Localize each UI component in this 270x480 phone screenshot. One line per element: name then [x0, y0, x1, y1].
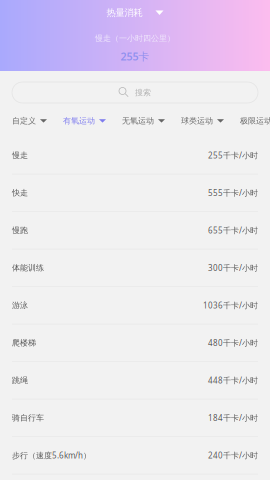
staticText: 步行（速度5.6km/h）: [12, 450, 91, 461]
staticText: 体能训练: [12, 263, 44, 273]
staticText: 快走: [12, 188, 28, 198]
staticText: 慢走（一小时四公里）: [95, 33, 175, 43]
staticText: 300千卡/小时: [208, 262, 258, 273]
staticText: 480千卡/小时: [208, 337, 258, 348]
button[interactable]: 快走: [0, 174, 270, 212]
button[interactable]: 自定义: [12, 113, 47, 129]
button[interactable]: 无氧运动: [122, 113, 165, 129]
staticText: 爬楼梯: [12, 338, 36, 348]
button[interactable]: 骑自行车: [0, 399, 270, 437]
staticText: 655千卡/小时: [208, 225, 258, 236]
staticText: 慢走: [12, 150, 28, 160]
button[interactable]: 有氧运动: [63, 113, 106, 129]
staticText: 有氧运动: [63, 116, 95, 126]
staticText: 无氧运动: [122, 116, 154, 126]
button[interactable]: 慢跑: [0, 212, 270, 249]
staticText: 游泳: [12, 300, 28, 310]
staticText: 255卡: [120, 49, 149, 63]
button[interactable]: 游泳: [0, 287, 270, 324]
staticText: 搜索: [135, 88, 151, 97]
staticText: 跳绳: [12, 375, 28, 385]
button[interactable]: 搜索: [12, 82, 258, 103]
staticText: 骑自行车: [12, 413, 44, 423]
staticText: 184千卡/小时: [208, 412, 258, 423]
button[interactable]: 跳绳: [0, 362, 270, 399]
button[interactable]: 体能训练: [0, 249, 270, 287]
button[interactable]: 慢走: [0, 137, 270, 174]
staticText: 448千卡/小时: [208, 375, 258, 386]
staticText: 极限运动: [240, 116, 270, 126]
staticText: 热量消耗: [106, 7, 142, 18]
staticText: 255千卡/小时: [208, 150, 258, 161]
button[interactable]: 爬楼梯: [0, 324, 270, 362]
staticText: 自定义: [12, 116, 36, 126]
button[interactable]: 球类运动: [181, 113, 224, 129]
staticText: 1036千卡/小时: [203, 300, 258, 311]
staticText: 555千卡/小时: [208, 187, 258, 198]
staticText: 慢跑: [12, 225, 28, 235]
staticText: 球类运动: [181, 116, 213, 126]
button[interactable]: 步行（速度5.6km/h）: [0, 437, 270, 474]
button[interactable]: 极限运动: [240, 113, 270, 129]
button[interactable]: 热量消耗: [106, 7, 163, 18]
staticText: 240千卡/小时: [208, 450, 258, 461]
